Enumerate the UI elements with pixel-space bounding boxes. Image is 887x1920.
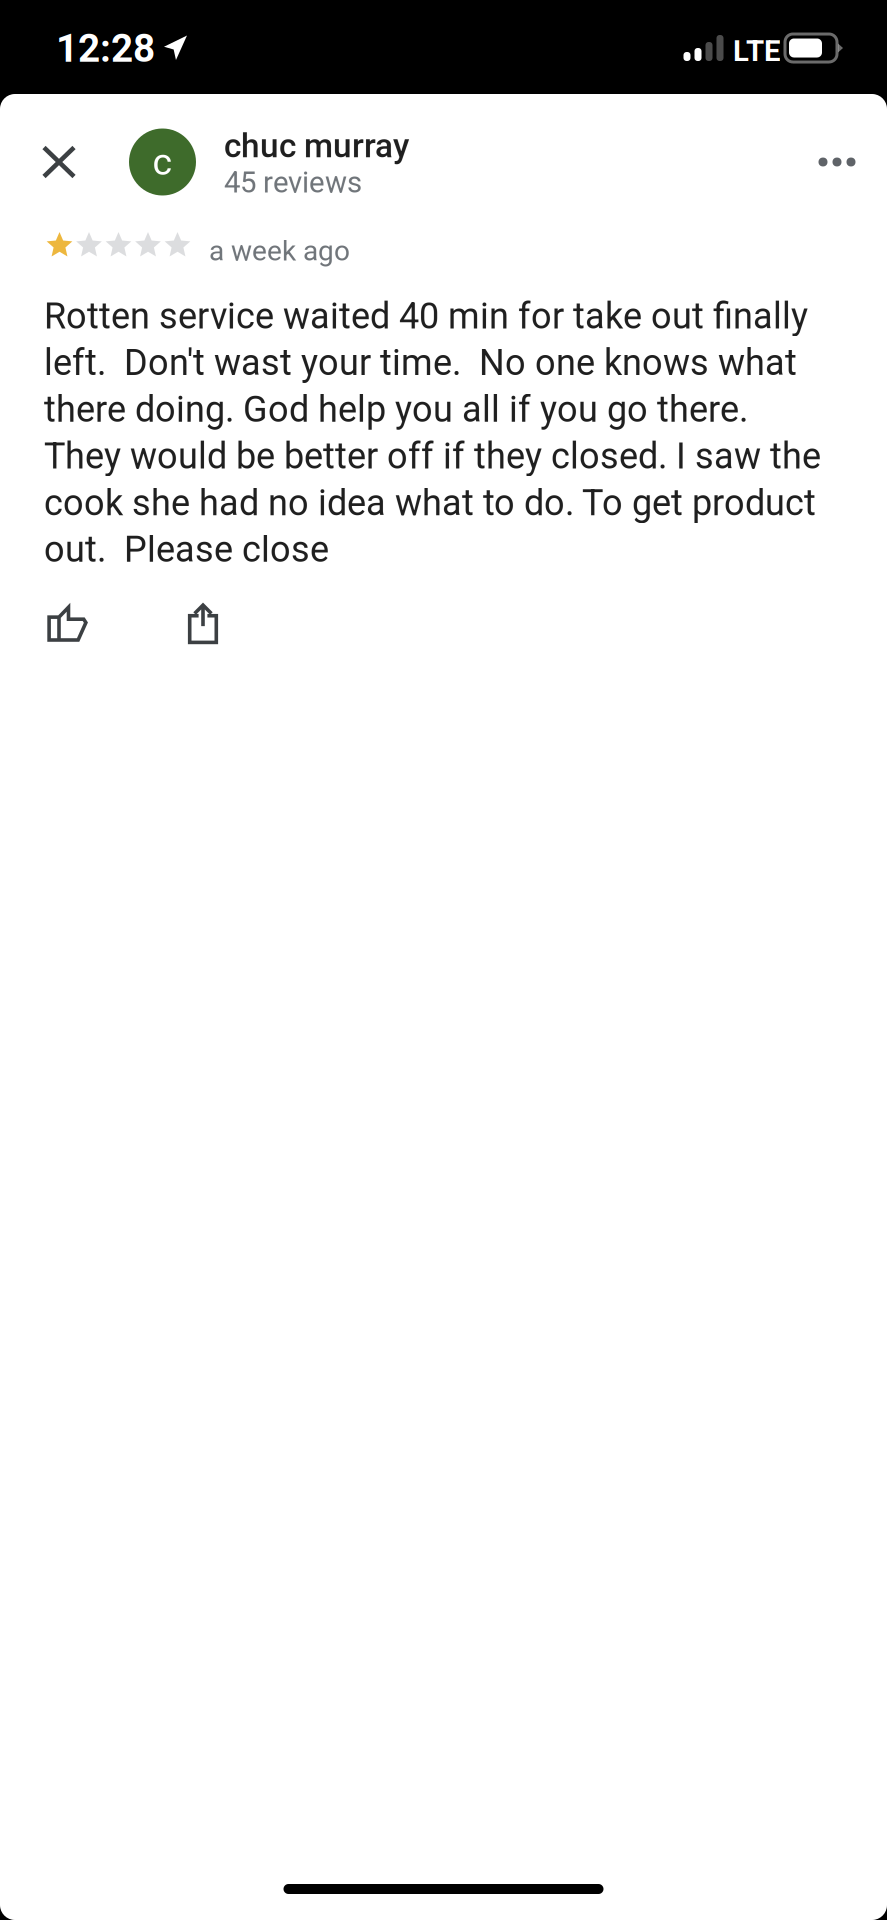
staticText: LTE (733, 34, 781, 68)
staticText: 12:28 (56, 26, 155, 71)
staticText: They would be better off if they closed.… (44, 435, 821, 477)
button[interactable]: Like (0, 582, 135, 666)
button[interactable]: Share (135, 582, 271, 666)
staticText: there doing. God help you all if you go … (44, 388, 748, 431)
staticText: Rotten service waited 40 min for take ou… (44, 295, 808, 337)
staticText: cook she had no idea what to do. To get … (44, 482, 816, 524)
staticText: a week ago (209, 235, 350, 267)
staticText: c (152, 140, 172, 184)
staticText: out. Please close (44, 528, 329, 571)
staticText: chuc murray (224, 126, 409, 165)
button[interactable]: More options (787, 94, 887, 230)
staticText: left. Don't wast your time. No one knows… (44, 342, 797, 384)
button[interactable]: Close (22, 94, 96, 230)
staticText: 45 reviews (224, 165, 362, 200)
